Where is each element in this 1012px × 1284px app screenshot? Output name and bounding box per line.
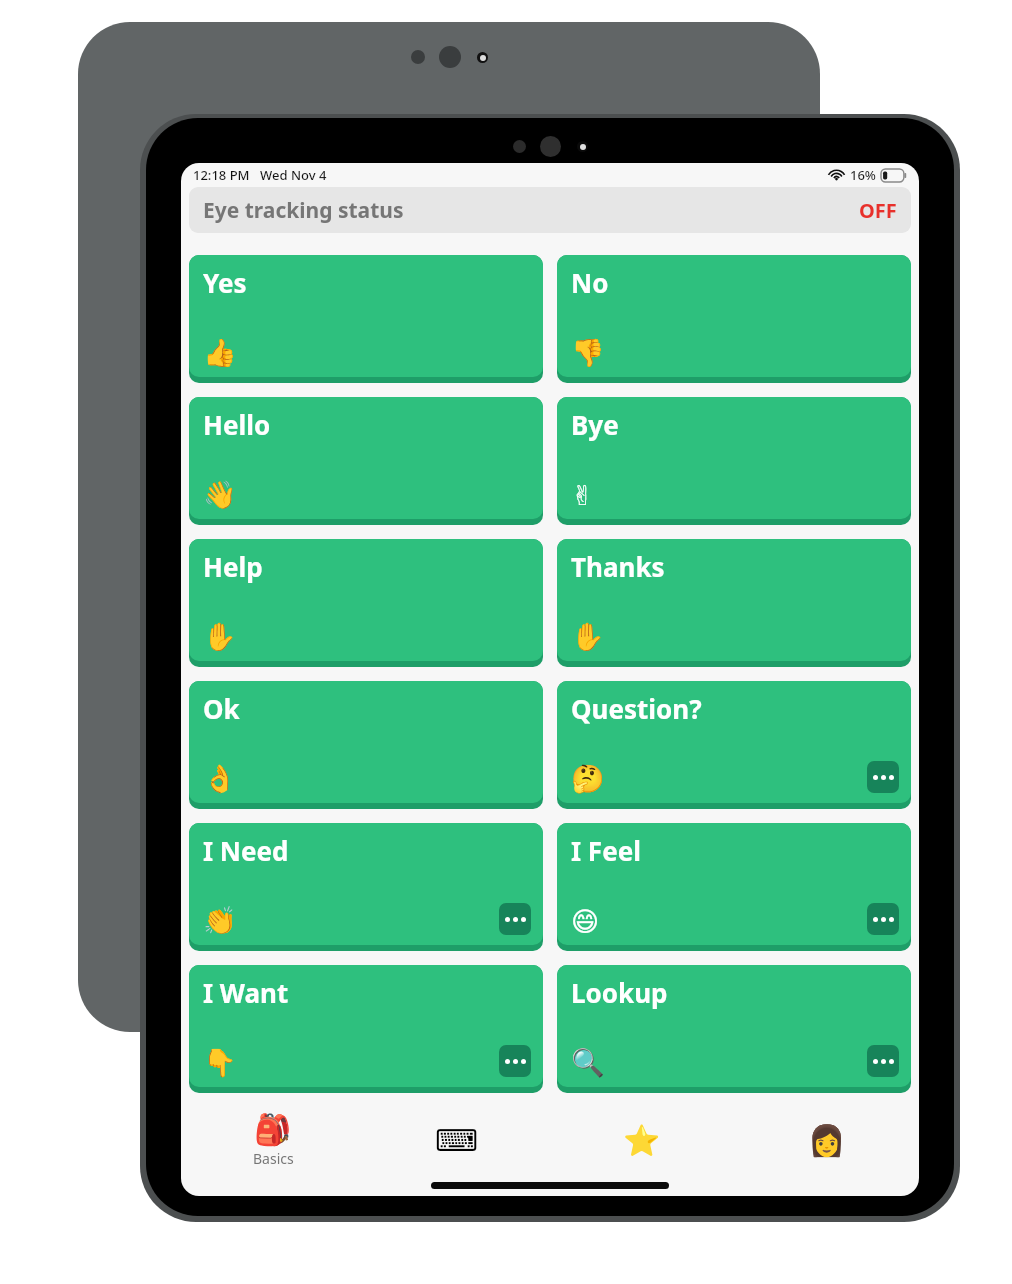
staticText: 👍 — [203, 337, 237, 369]
button[interactable]: Tab — [365, 1106, 549, 1174]
staticText: 👇 — [203, 1047, 237, 1079]
button[interactable]: More options for Lookup — [867, 1045, 899, 1077]
button[interactable]: Thanks — [557, 539, 911, 661]
staticText: Bye — [571, 407, 619, 442]
staticText: Eye tracking status — [203, 196, 404, 225]
button[interactable]: More options for I Want — [499, 1045, 531, 1077]
button[interactable]: More options for I Feel — [867, 903, 899, 935]
staticText: I Need — [203, 833, 289, 868]
staticText: I Feel — [571, 833, 641, 868]
staticText: ✌️ — [571, 480, 594, 511]
staticText: Help — [203, 549, 263, 584]
button[interactable]: More options for Question? — [867, 761, 899, 793]
staticText: 👌 — [203, 763, 237, 795]
staticText: 👩 — [808, 1123, 846, 1158]
button[interactable]: Tab — [549, 1106, 734, 1174]
staticText: Ok — [203, 691, 240, 726]
staticText: Basics — [253, 1149, 294, 1168]
staticText: Question? — [571, 691, 702, 726]
staticText: ⭐ — [623, 1123, 661, 1158]
button[interactable]: Bye — [557, 397, 911, 519]
button[interactable]: Lookup — [557, 965, 911, 1087]
staticText: 👏 — [203, 905, 237, 937]
staticText: ✋ — [571, 621, 605, 653]
staticText: Hello — [203, 407, 271, 442]
staticText: Lookup — [571, 975, 668, 1010]
button[interactable]: Hello — [189, 397, 543, 519]
staticText: 🎒 — [254, 1112, 292, 1147]
button[interactable]: Yes — [189, 255, 543, 377]
button[interactable]: Question? — [557, 681, 911, 803]
button[interactable]: Eye tracking status — [189, 187, 911, 233]
staticText: No — [571, 265, 609, 300]
button[interactable]: Basics — [181, 1106, 365, 1174]
staticText: 🤔 — [571, 763, 605, 795]
staticText: Thanks — [571, 549, 665, 584]
staticText: ⌨️ — [435, 1123, 479, 1158]
staticText: 12:18 PM — [193, 166, 250, 184]
staticText: I Want — [203, 975, 289, 1010]
staticText: 🔍 — [571, 1047, 605, 1079]
button[interactable]: I Need — [189, 823, 543, 945]
button[interactable]: I Feel — [557, 823, 911, 945]
staticText: Yes — [203, 265, 247, 300]
button[interactable]: More options for I Need — [499, 903, 531, 935]
staticText: ✋ — [203, 621, 237, 653]
button[interactable]: No — [557, 255, 911, 377]
button[interactable]: I Want — [189, 965, 543, 1087]
button[interactable]: Ok — [189, 681, 543, 803]
staticText: OFF — [859, 197, 897, 224]
staticText: 👋 — [203, 479, 237, 511]
staticText: 👎 — [571, 337, 605, 369]
staticText: 16% — [850, 166, 876, 184]
button[interactable]: Tab — [734, 1106, 919, 1174]
staticText: Wed Nov 4 — [260, 166, 327, 184]
button[interactable]: Help — [189, 539, 543, 661]
staticText: 😄 — [571, 906, 600, 937]
